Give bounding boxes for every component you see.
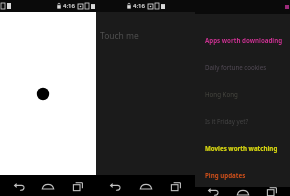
staticText: Ping updates bbox=[205, 171, 246, 179]
button[interactable]: Home bbox=[135, 177, 157, 195]
button[interactable]: Back bbox=[104, 177, 126, 195]
staticText: Movies worth watching bbox=[205, 144, 278, 152]
button[interactable]: Back bbox=[8, 177, 30, 195]
button[interactable]: Is it Friday yet? bbox=[195, 108, 290, 133]
staticText: Daily fortune cookies bbox=[205, 63, 267, 71]
button[interactable] bbox=[0, 12, 96, 175]
button[interactable]: Back bbox=[202, 187, 224, 196]
button[interactable]: Recents bbox=[261, 187, 283, 196]
button[interactable]: Home bbox=[37, 177, 59, 195]
staticText: 4:16 bbox=[63, 2, 75, 10]
button[interactable]: Hong Kong bbox=[195, 81, 290, 106]
staticText: Touch me bbox=[100, 30, 139, 42]
button[interactable]: Recents bbox=[67, 177, 89, 195]
button[interactable]: Recents bbox=[165, 177, 187, 195]
button[interactable]: Movies worth watching bbox=[195, 135, 290, 160]
button[interactable]: Ping updates bbox=[195, 162, 290, 187]
button[interactable]: Home bbox=[232, 187, 254, 196]
button[interactable]: Apps worth downloading bbox=[195, 27, 290, 52]
staticText: 4:16 bbox=[133, 2, 145, 10]
button[interactable]: Daily fortune cookies bbox=[195, 54, 290, 79]
staticText: Is it Friday yet? bbox=[205, 117, 249, 125]
staticText: Hong Kong bbox=[205, 90, 238, 98]
staticText: Apps worth downloading bbox=[205, 36, 283, 44]
